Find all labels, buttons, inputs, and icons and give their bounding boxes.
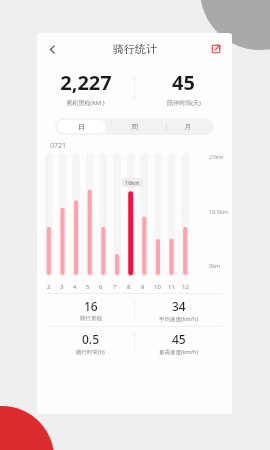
staticText: 0km bbox=[209, 262, 221, 269]
button[interactable]: 16 bbox=[47, 298, 134, 322]
staticText: 骑行里程 bbox=[80, 315, 102, 322]
staticText: 34 bbox=[172, 298, 186, 314]
staticText: 7 bbox=[113, 283, 117, 291]
staticText: 11 bbox=[168, 283, 175, 291]
staticText: 10 bbox=[154, 283, 161, 291]
staticText: 周 bbox=[131, 122, 138, 131]
staticText: 日 bbox=[78, 122, 85, 131]
button[interactable]: 0.5 bbox=[47, 331, 134, 356]
staticText: 16 bbox=[84, 298, 98, 314]
staticText: 9 bbox=[141, 283, 145, 291]
staticText: 0721 bbox=[50, 141, 67, 151]
button[interactable]: 周 bbox=[108, 118, 161, 135]
button[interactable]: 34 bbox=[135, 298, 222, 323]
staticText: 2,227 bbox=[60, 69, 112, 96]
staticText: 月 bbox=[184, 122, 191, 131]
staticText: 45 bbox=[172, 69, 195, 96]
staticText: 0.5 bbox=[82, 331, 99, 347]
staticText: 12 bbox=[182, 283, 189, 291]
button[interactable]: Share bbox=[207, 40, 225, 58]
button[interactable]: 月 bbox=[161, 118, 214, 135]
staticText: 累积里程(KM ) bbox=[66, 99, 105, 107]
staticText: 5 bbox=[86, 283, 90, 291]
button[interactable]: Back bbox=[42, 39, 62, 59]
staticText: 45 bbox=[172, 331, 186, 347]
staticText: 3 bbox=[60, 283, 64, 291]
button[interactable]: 日 bbox=[57, 120, 106, 133]
staticText: 最高速度(km/h) bbox=[159, 348, 198, 356]
staticText: 6 bbox=[99, 283, 103, 291]
staticText: 骑行统计 bbox=[113, 42, 157, 56]
staticText: 陪伴时间(天) bbox=[167, 99, 201, 107]
staticText: 骑行时常(h) bbox=[76, 348, 105, 356]
staticText: 16km bbox=[125, 179, 140, 186]
staticText: 21km bbox=[209, 153, 224, 160]
button[interactable]: 45 bbox=[135, 331, 222, 356]
staticText: 8 bbox=[127, 283, 131, 291]
staticText: 10.5km bbox=[209, 208, 228, 215]
staticText: 平均速度(km/h) bbox=[159, 315, 198, 323]
staticText: 4 bbox=[73, 283, 77, 291]
staticText: 2 bbox=[47, 283, 51, 291]
